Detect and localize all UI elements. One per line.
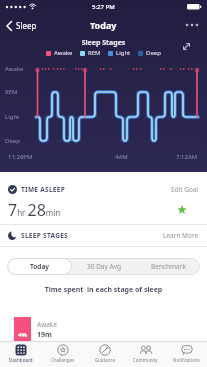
staticText: Today [90, 19, 117, 31]
staticText: Learn More [163, 231, 199, 240]
staticText: 19m [37, 330, 52, 340]
staticText: SLEEP STAGES [21, 231, 68, 240]
staticText: 11:26PM [8, 153, 33, 161]
staticText: Deep [146, 49, 161, 57]
staticText: Awake [54, 49, 73, 57]
staticText: Guidance [95, 357, 115, 363]
staticText: REM [5, 88, 18, 96]
staticText: Light [5, 113, 20, 121]
staticText: Benchmark [151, 262, 186, 271]
button[interactable]: Guidance [84, 342, 125, 367]
staticText: Community [133, 357, 158, 363]
staticText: 5:27 PM [92, 3, 115, 11]
staticText: Deep [5, 137, 20, 145]
staticText: REM [88, 49, 101, 57]
staticText: 4% [18, 331, 27, 339]
staticText: Dashboard [9, 357, 33, 363]
staticText: Challenges [51, 357, 75, 363]
staticText: Notifications [173, 357, 200, 363]
staticText: 4AM [115, 153, 128, 161]
button[interactable]: Benchmark [136, 258, 200, 275]
button[interactable] [185, 23, 199, 27]
staticText: Light [116, 49, 131, 57]
button[interactable]: Dashboard [0, 342, 42, 367]
staticText: Today [30, 262, 50, 271]
staticText: Awake [5, 65, 24, 73]
button[interactable]: Community [125, 342, 166, 367]
button[interactable]: Notifications [166, 342, 207, 367]
button[interactable] [182, 42, 191, 51]
staticText: 7:12AM [176, 153, 198, 161]
staticText: 7hr 28min [8, 199, 61, 221]
staticText: Time spent in each stage of sleep [0, 285, 207, 295]
button[interactable]: 30 Day Avg [72, 258, 136, 275]
button[interactable]: Challenges [42, 342, 84, 367]
staticText: Edit Goal [171, 185, 199, 194]
button[interactable]: Today [7, 258, 72, 275]
staticText: Awake [37, 320, 58, 329]
button[interactable]: Edit Goal [171, 185, 199, 194]
staticText: Sleep [16, 20, 37, 31]
button[interactable]: Learn More [163, 231, 199, 240]
staticText: Sleep Stages [0, 38, 207, 48]
staticText: TIME ASLEEP [21, 185, 66, 194]
button[interactable]: Sleep [6, 20, 37, 31]
staticText: 30 Day Avg [87, 262, 121, 271]
